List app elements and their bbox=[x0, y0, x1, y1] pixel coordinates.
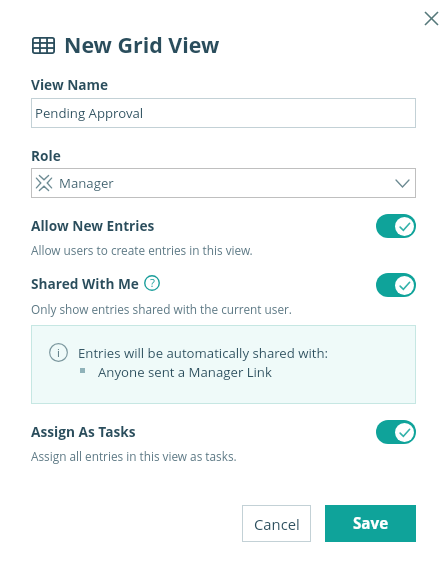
button[interactable]: Save bbox=[325, 505, 416, 542]
staticText: Assign all entries in this view as tasks… bbox=[31, 448, 237, 464]
button[interactable]: Pending Approval bbox=[31, 98, 416, 128]
staticText: Cancel bbox=[254, 514, 300, 534]
staticText: Shared With Me bbox=[31, 274, 139, 293]
button[interactable]: Close bbox=[417, 4, 445, 32]
button[interactable]: Help bbox=[144, 275, 160, 291]
button[interactable]: Manager bbox=[31, 168, 416, 198]
button[interactable]: Assign As Tasks bbox=[376, 420, 416, 444]
button[interactable]: Shared With Me bbox=[376, 273, 416, 297]
staticText: ? bbox=[150, 275, 155, 291]
staticText: Anyone sent a Manager Link bbox=[98, 363, 272, 381]
staticText: Manager bbox=[59, 174, 114, 192]
staticText: Only show entries shared with the curren… bbox=[31, 301, 292, 317]
staticText: Entries will be automatically shared wit… bbox=[78, 344, 329, 362]
button[interactable]: Cancel bbox=[242, 505, 311, 542]
staticText: Allow New Entries bbox=[31, 216, 155, 235]
staticText: New Grid View bbox=[64, 30, 220, 59]
staticText: Pending Approval bbox=[35, 104, 144, 122]
staticText: Role bbox=[31, 146, 61, 165]
staticText: Save bbox=[353, 513, 389, 534]
staticText: View Name bbox=[31, 75, 109, 94]
button[interactable]: Allow New Entries bbox=[376, 214, 416, 238]
staticText: Assign As Tasks bbox=[31, 422, 136, 441]
staticText: i bbox=[57, 345, 60, 360]
staticText: Allow users to create entries in this vi… bbox=[31, 242, 253, 258]
